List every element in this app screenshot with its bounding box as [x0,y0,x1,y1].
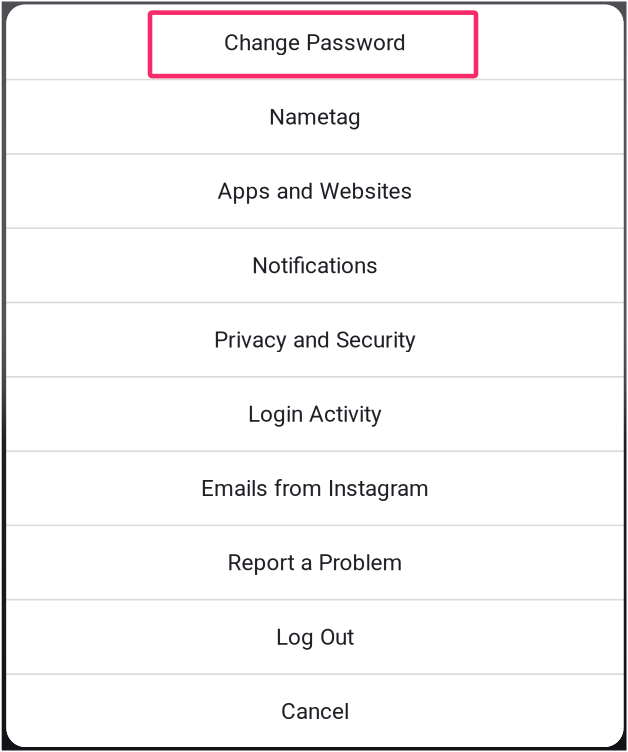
staticText: Apps and Websites [217,178,412,204]
staticText: Privacy and Security [214,327,416,353]
button[interactable]: Cancel [6,675,623,747]
staticText: Change Password [224,29,406,56]
staticText: Cancel [281,698,349,724]
staticText: Report a Problem [227,549,402,576]
button[interactable]: Apps and Websites [6,155,623,227]
staticText: Login Activity [248,401,382,427]
staticText: Log Out [276,624,354,650]
button[interactable]: Change Password [6,6,623,79]
button[interactable]: Nametag [6,81,623,153]
staticText: Nametag [269,104,361,130]
button[interactable]: Notifications [6,229,623,302]
staticText: Notifications [252,252,378,279]
button[interactable]: Report a Problem [6,526,623,599]
button[interactable]: Login Activity [6,378,623,450]
staticText: Emails from Instagram [201,475,429,501]
button[interactable]: Emails from Instagram [6,452,623,525]
button[interactable]: Log Out [6,601,623,673]
button[interactable]: Privacy and Security [6,303,623,376]
